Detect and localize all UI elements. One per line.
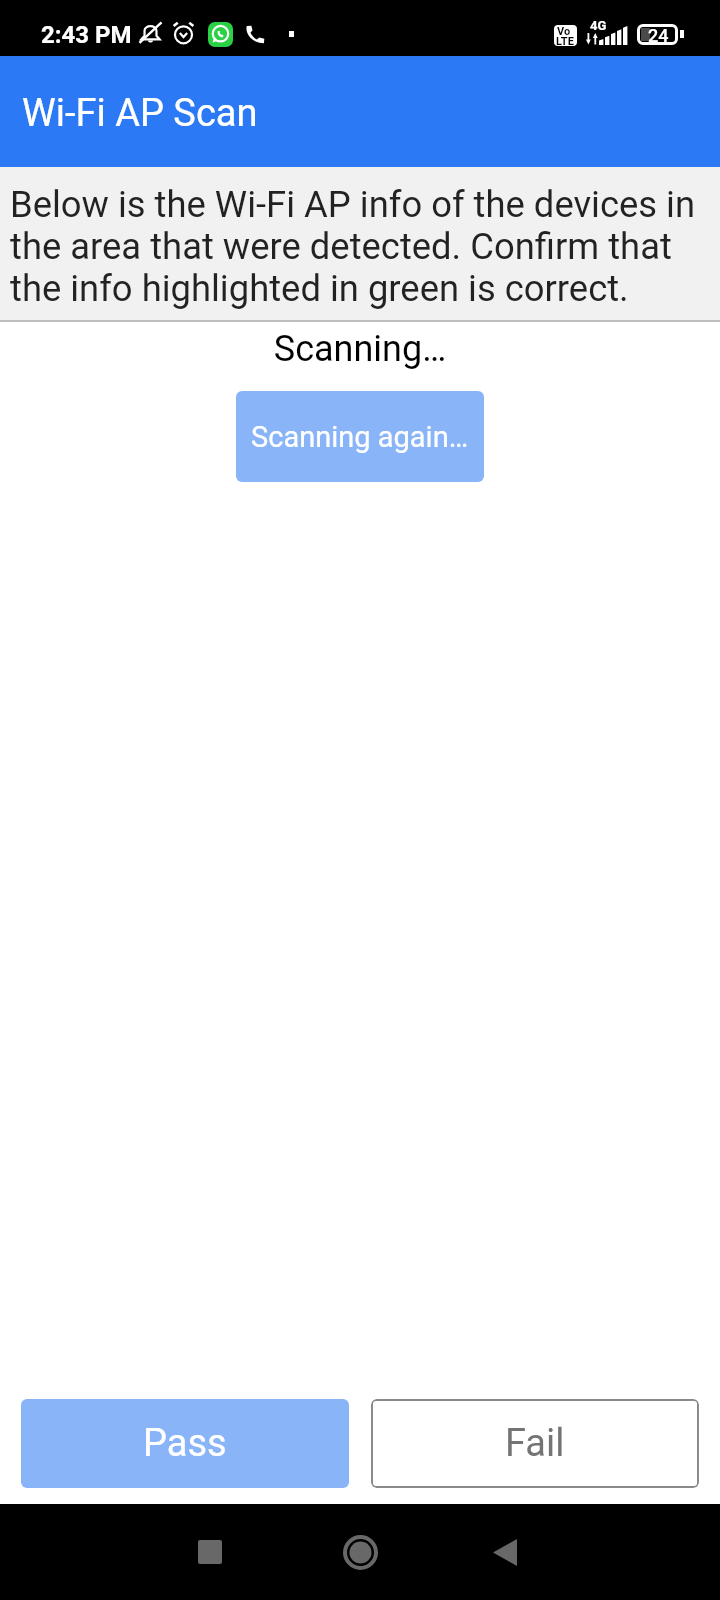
button[interactable]: Home [312, 1504, 408, 1600]
button[interactable]: Scanning again… [236, 391, 484, 482]
button[interactable]: Pass [21, 1399, 349, 1488]
staticText: 2:43 PM [41, 21, 132, 49]
staticText: LTE [556, 35, 574, 46]
staticText: Wi-Fi AP Scan [22, 91, 258, 136]
button[interactable]: Back [457, 1504, 553, 1600]
staticText: 4G [590, 18, 607, 33]
staticText: Pass [143, 1421, 227, 1466]
staticText: 24 [648, 25, 669, 46]
staticText: Scanning… [0, 328, 720, 370]
staticText: Vo [557, 25, 571, 38]
staticText: Fail [505, 1421, 565, 1466]
button[interactable]: Fail [371, 1399, 699, 1488]
button[interactable]: Recent apps [162, 1504, 258, 1600]
staticText: Scanning again… [251, 420, 469, 454]
staticText: Below is the Wi-Fi AP info of the device… [10, 183, 706, 310]
